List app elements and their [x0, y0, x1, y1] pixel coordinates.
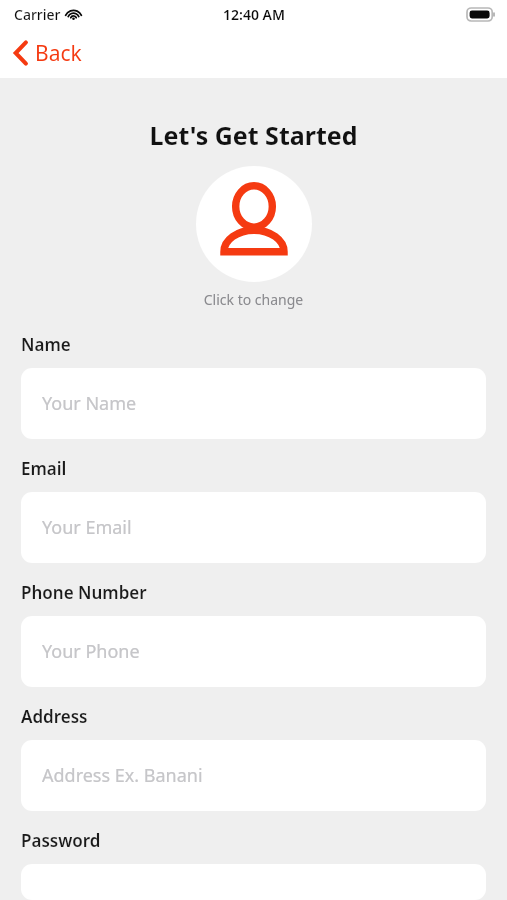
- button[interactable]: Your Email: [21, 492, 486, 563]
- staticText: 12:40 AM: [223, 5, 285, 24]
- button[interactable]: Address Ex. Banani: [21, 740, 486, 811]
- staticText: Your Name: [42, 391, 137, 416]
- staticText: Address: [21, 705, 88, 728]
- staticText: Password: [21, 829, 101, 852]
- staticText: Your Email: [42, 515, 132, 540]
- button[interactable]: Change profile picture: [196, 166, 312, 282]
- staticText: Phone Number: [21, 581, 147, 604]
- staticText: Let's Get Started: [0, 118, 507, 152]
- button[interactable]: Your Phone: [21, 616, 486, 687]
- button[interactable]: Your Name: [21, 368, 486, 439]
- staticText: Back: [35, 39, 82, 68]
- other: Back: [14, 41, 28, 65]
- staticText: Name: [21, 333, 71, 356]
- staticText: Your Phone: [42, 639, 140, 664]
- staticText: Carrier: [14, 5, 61, 24]
- staticText: Email: [21, 457, 67, 480]
- button[interactable]: Back: [0, 28, 96, 78]
- staticText: Address Ex. Banani: [42, 763, 203, 788]
- button[interactable]: Click to change: [0, 290, 507, 309]
